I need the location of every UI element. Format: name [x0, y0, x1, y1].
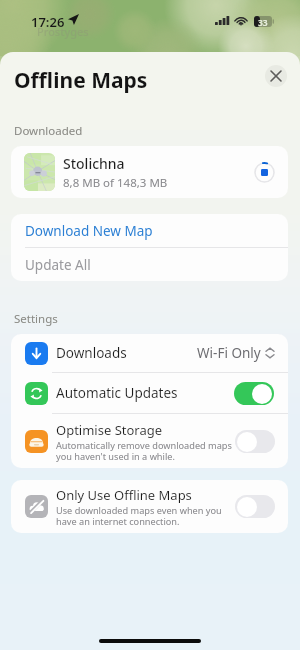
button[interactable]: Off	[235, 430, 275, 453]
button[interactable]: Update All	[11, 248, 288, 281]
button[interactable]: Download New Map	[11, 214, 288, 247]
button[interactable]: Automatic Updates	[11, 373, 288, 413]
button[interactable]: Only Use Offline Maps	[11, 480, 288, 533]
button[interactable]: Downloads	[11, 334, 288, 372]
staticText: Settings	[14, 311, 58, 327]
staticText: Update All	[25, 256, 91, 274]
button[interactable]: Stolichna	[11, 146, 288, 198]
button[interactable]: Close	[265, 65, 287, 87]
button[interactable]: On	[234, 382, 274, 405]
staticText: Optimise Storage	[56, 421, 163, 439]
staticText: Downloaded	[14, 123, 83, 139]
staticText: Offline Maps	[14, 66, 148, 95]
staticText: Downloads	[56, 344, 127, 362]
staticText: Wi-Fi Only	[197, 344, 261, 362]
staticText: Prostyges	[37, 24, 89, 39]
staticText: 8,8 MB of 148,3 MB	[63, 175, 168, 191]
staticText: Only Use Offline Maps	[56, 486, 192, 504]
button[interactable]: Off	[235, 495, 275, 518]
staticText: Stolichna	[63, 154, 125, 173]
staticText: 33	[258, 17, 268, 29]
staticText: Automatic Updates	[56, 384, 178, 402]
button[interactable]: Optimise Storage	[11, 414, 288, 468]
button[interactable]: Stop download	[252, 160, 276, 184]
staticText: Use downloaded maps even when you have a…	[56, 504, 222, 527]
staticText: Download New Map	[25, 222, 153, 240]
staticText: Automatically remove downloaded maps you…	[56, 439, 232, 462]
staticText: 17:26	[31, 13, 65, 31]
